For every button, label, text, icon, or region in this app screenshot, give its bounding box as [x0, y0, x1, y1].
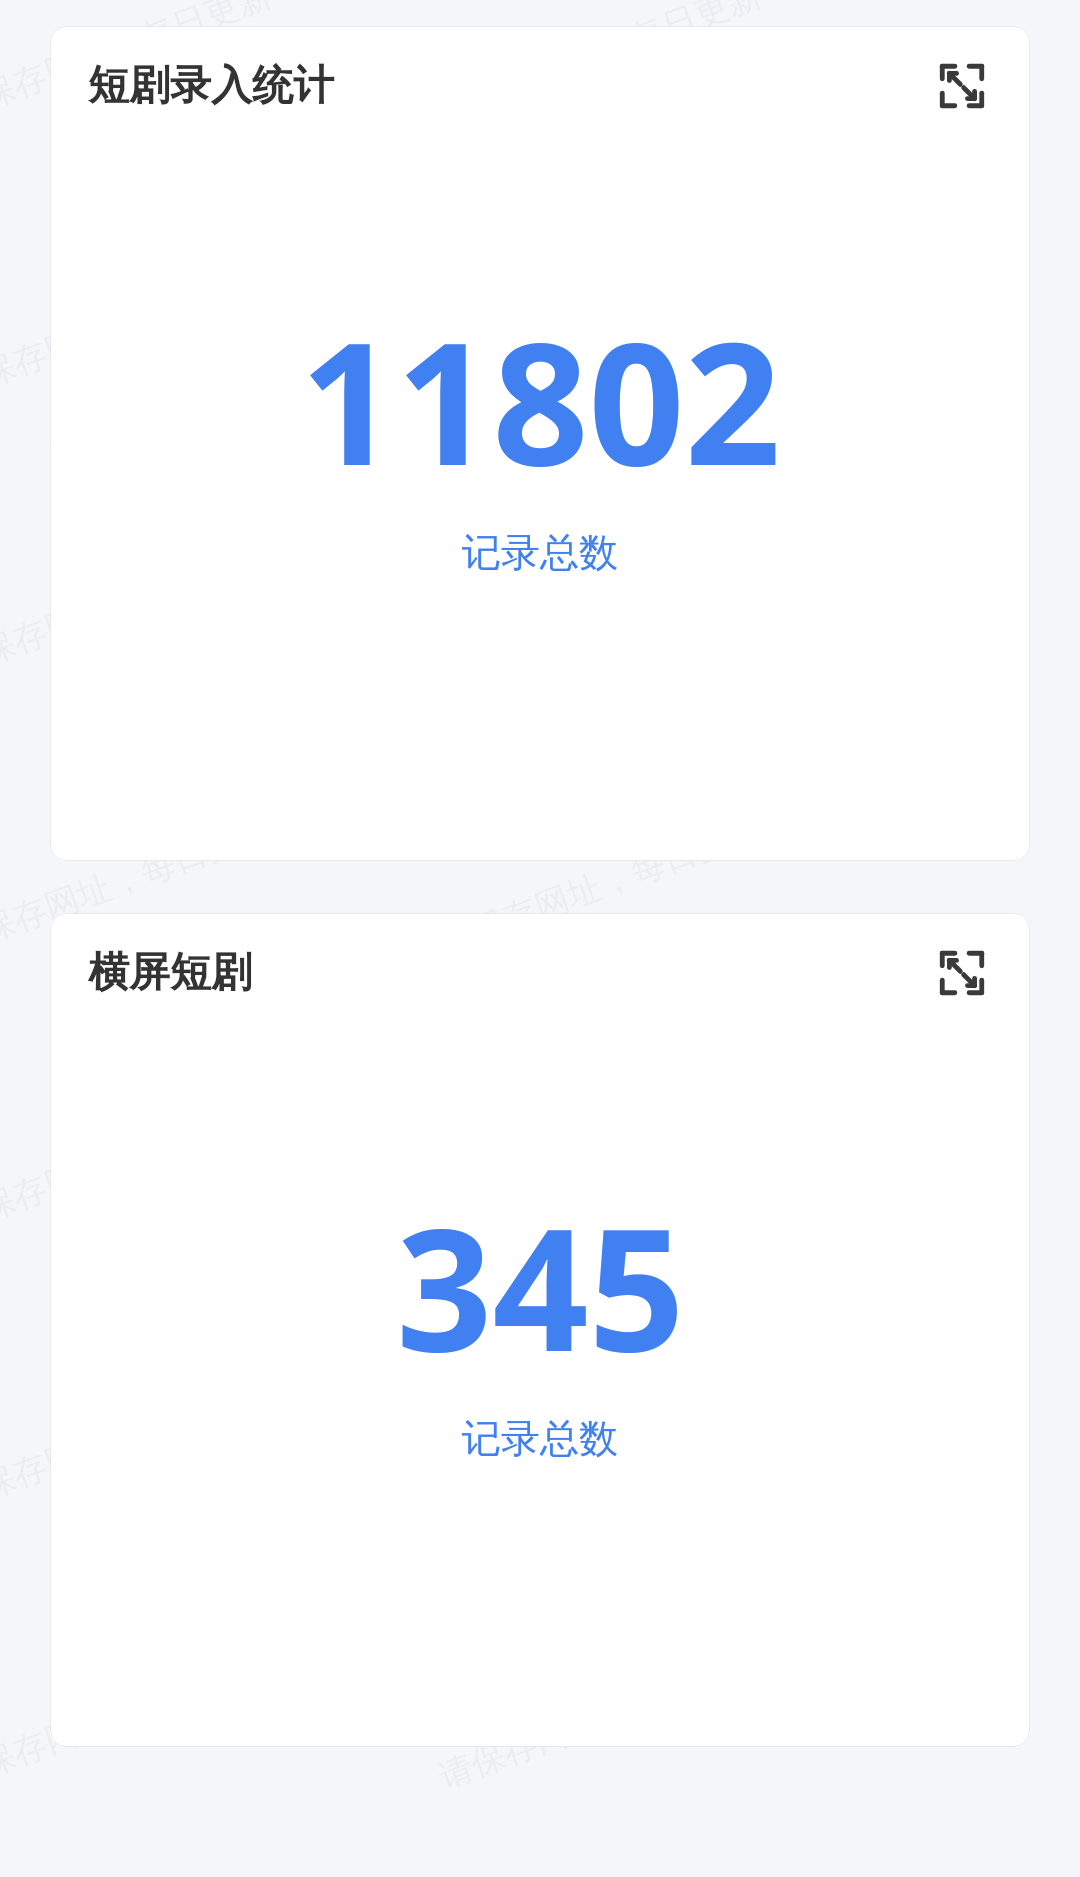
button[interactable]: Fullscreen	[932, 56, 992, 116]
staticText: 请保存网址，每日更新	[433, 0, 767, 130]
staticText: 记录总数	[462, 528, 618, 577]
staticText: 请保存网址，每日更新	[433, 1641, 767, 1798]
staticText: 11802	[300, 285, 781, 514]
staticText: 请保存网址，每日更新	[0, 1641, 277, 1798]
staticText: 横屏短剧	[88, 947, 252, 999]
staticText: 请保存网址，每日更新	[433, 1363, 767, 1520]
staticText: 记录总数	[462, 1414, 618, 1463]
staticText: 请保存网址，每日更新	[433, 251, 767, 408]
staticText: 请保存网址，每日更新	[0, 1085, 277, 1242]
staticText: 请保存网址，每日更新	[0, 0, 277, 130]
button[interactable]: Fullscreen	[932, 943, 992, 1003]
staticText: 短剧录入统计	[88, 60, 334, 112]
button[interactable]: 短剧录入统计	[50, 26, 1030, 861]
button[interactable]: 横屏短剧	[50, 913, 1030, 1747]
staticText: 请保存网址，每日更新	[0, 1363, 277, 1520]
staticText: 345	[396, 1171, 685, 1400]
staticText: 请保存网址，每日更新	[0, 807, 277, 964]
staticText: 请保存网址，每日更新	[0, 529, 277, 686]
staticText: 请保存网址，每日更新	[433, 807, 767, 964]
staticText: 请保存网址，每日更新	[0, 251, 277, 408]
staticText: 请保存网址，每日更新	[433, 529, 767, 686]
staticText: 请保存网址，每日更新	[433, 1085, 767, 1242]
